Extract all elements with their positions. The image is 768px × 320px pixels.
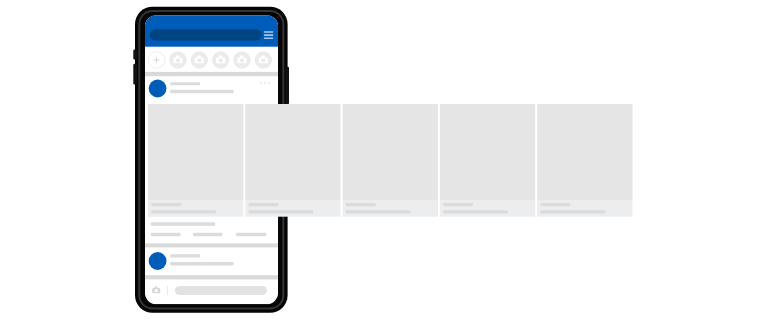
button[interactable]: Write a comment xyxy=(172,283,270,298)
button[interactable]: Add to story xyxy=(148,51,165,68)
button[interactable]: Photo 2 xyxy=(245,104,340,217)
button[interactable]: More options xyxy=(256,77,274,90)
button[interactable]: Photo 4 xyxy=(440,104,535,217)
button[interactable]: Post author xyxy=(145,248,274,272)
button[interactable]: Open story 3 xyxy=(212,51,229,68)
button[interactable]: Open story 1 xyxy=(169,51,186,68)
button[interactable]: Open story 2 xyxy=(191,51,208,68)
button[interactable]: Search xyxy=(150,28,262,42)
button[interactable]: Share xyxy=(233,229,269,240)
button[interactable]: Take photo xyxy=(150,283,164,298)
button[interactable]: Comment xyxy=(190,229,226,240)
button[interactable]: Photo 1 xyxy=(148,104,243,217)
button[interactable]: Post author xyxy=(145,76,255,99)
button[interactable]: Photo 3 xyxy=(343,104,438,217)
button[interactable]: Menu xyxy=(264,29,277,43)
button[interactable]: Photo 5 xyxy=(537,104,632,217)
button[interactable]: Open story 5 xyxy=(255,51,272,68)
button[interactable]: Open story 4 xyxy=(233,51,250,68)
button[interactable]: Like xyxy=(148,229,184,240)
